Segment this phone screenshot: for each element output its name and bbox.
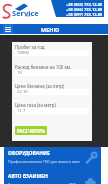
staticText: 11.7 xyxy=(17,108,26,114)
button[interactable]: ОБОРУДОВАНИЕ xyxy=(4,147,101,170)
staticText: 22.10 xyxy=(17,89,28,95)
button[interactable]: 11.7 xyxy=(17,108,89,114)
staticText: +38 (063) 733-12-88 xyxy=(66,2,103,7)
button[interactable]: Открыть меню xyxy=(3,24,13,34)
button[interactable]: РАССЧИТАТЬ xyxy=(15,126,47,135)
staticText: Профессиональное ГБО для вашего авто xyxy=(8,159,80,164)
staticText: Авто в аренду на время установки ГБО xyxy=(8,182,76,184)
staticText: ОБОРУДОВАНИЕ xyxy=(8,150,50,157)
staticText: Цена бензина (за литр) xyxy=(15,83,65,89)
staticText: 10 xyxy=(17,70,22,76)
button[interactable]: АВТО ВЗАИМЕН xyxy=(4,170,101,184)
button[interactable]: 10000 xyxy=(17,50,89,56)
button[interactable]: 10 xyxy=(17,70,89,76)
staticText: +38 (066) 733-12-88 xyxy=(66,7,103,12)
staticText: Пробег за год xyxy=(15,44,45,50)
button[interactable]: 22.10 xyxy=(17,89,89,95)
staticText: +38 (097) 733-12-88 xyxy=(66,12,103,17)
staticText: Service xyxy=(12,8,39,18)
button[interactable]: МЕНЮ xyxy=(41,26,60,33)
staticText: 10000 xyxy=(17,50,29,56)
staticText: Цена газа (за метр) xyxy=(15,102,56,108)
staticText: АВТО ВЗАИМЕН xyxy=(8,173,48,180)
staticText: РАССЧИТАТЬ xyxy=(17,128,45,134)
staticText: МЕНЮ xyxy=(41,26,60,33)
staticText: Расход бензина на 100 км. xyxy=(15,64,72,70)
staticText: ГБО xyxy=(25,14,32,18)
